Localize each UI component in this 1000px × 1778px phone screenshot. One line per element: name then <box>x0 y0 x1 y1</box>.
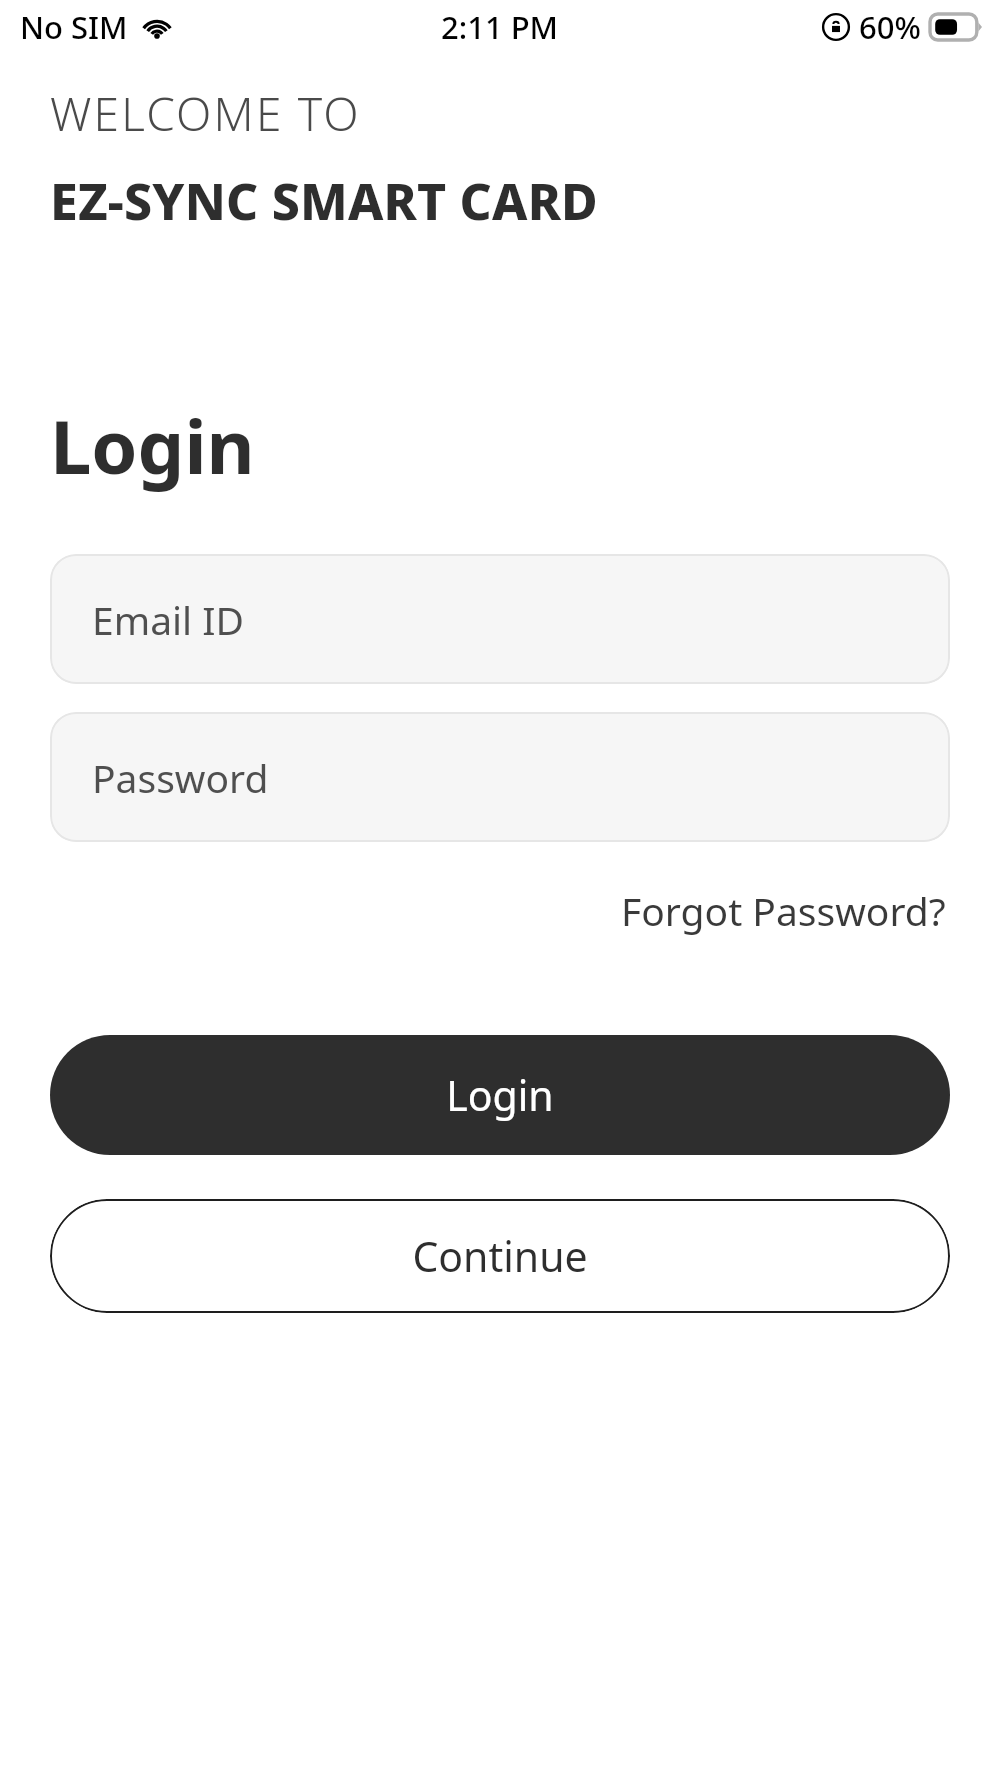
staticText: EZ-SYNC SMART CARD <box>50 167 598 235</box>
staticText: Email ID <box>92 593 244 646</box>
staticText: No SIM <box>20 6 128 48</box>
other: Rotation lock <box>822 13 850 41</box>
button[interactable]: Continue <box>50 1199 950 1313</box>
button[interactable]: Password <box>50 712 950 842</box>
staticText: Forgot Password? <box>621 884 946 937</box>
button[interactable]: Forgot Password? <box>617 878 950 943</box>
staticText: Login <box>446 1067 554 1123</box>
other: Battery 60 percent <box>930 14 982 40</box>
staticText: 60% <box>859 6 921 48</box>
staticText: Login <box>50 395 255 496</box>
button[interactable]: Email ID <box>50 554 950 684</box>
staticText: Continue <box>412 1228 588 1284</box>
staticText: WELCOME TO <box>50 82 361 145</box>
staticText: Password <box>92 751 269 804</box>
button[interactable]: Login <box>50 1035 950 1155</box>
other: Wi-Fi <box>140 13 174 41</box>
staticText: 2:11 PM <box>441 6 559 48</box>
